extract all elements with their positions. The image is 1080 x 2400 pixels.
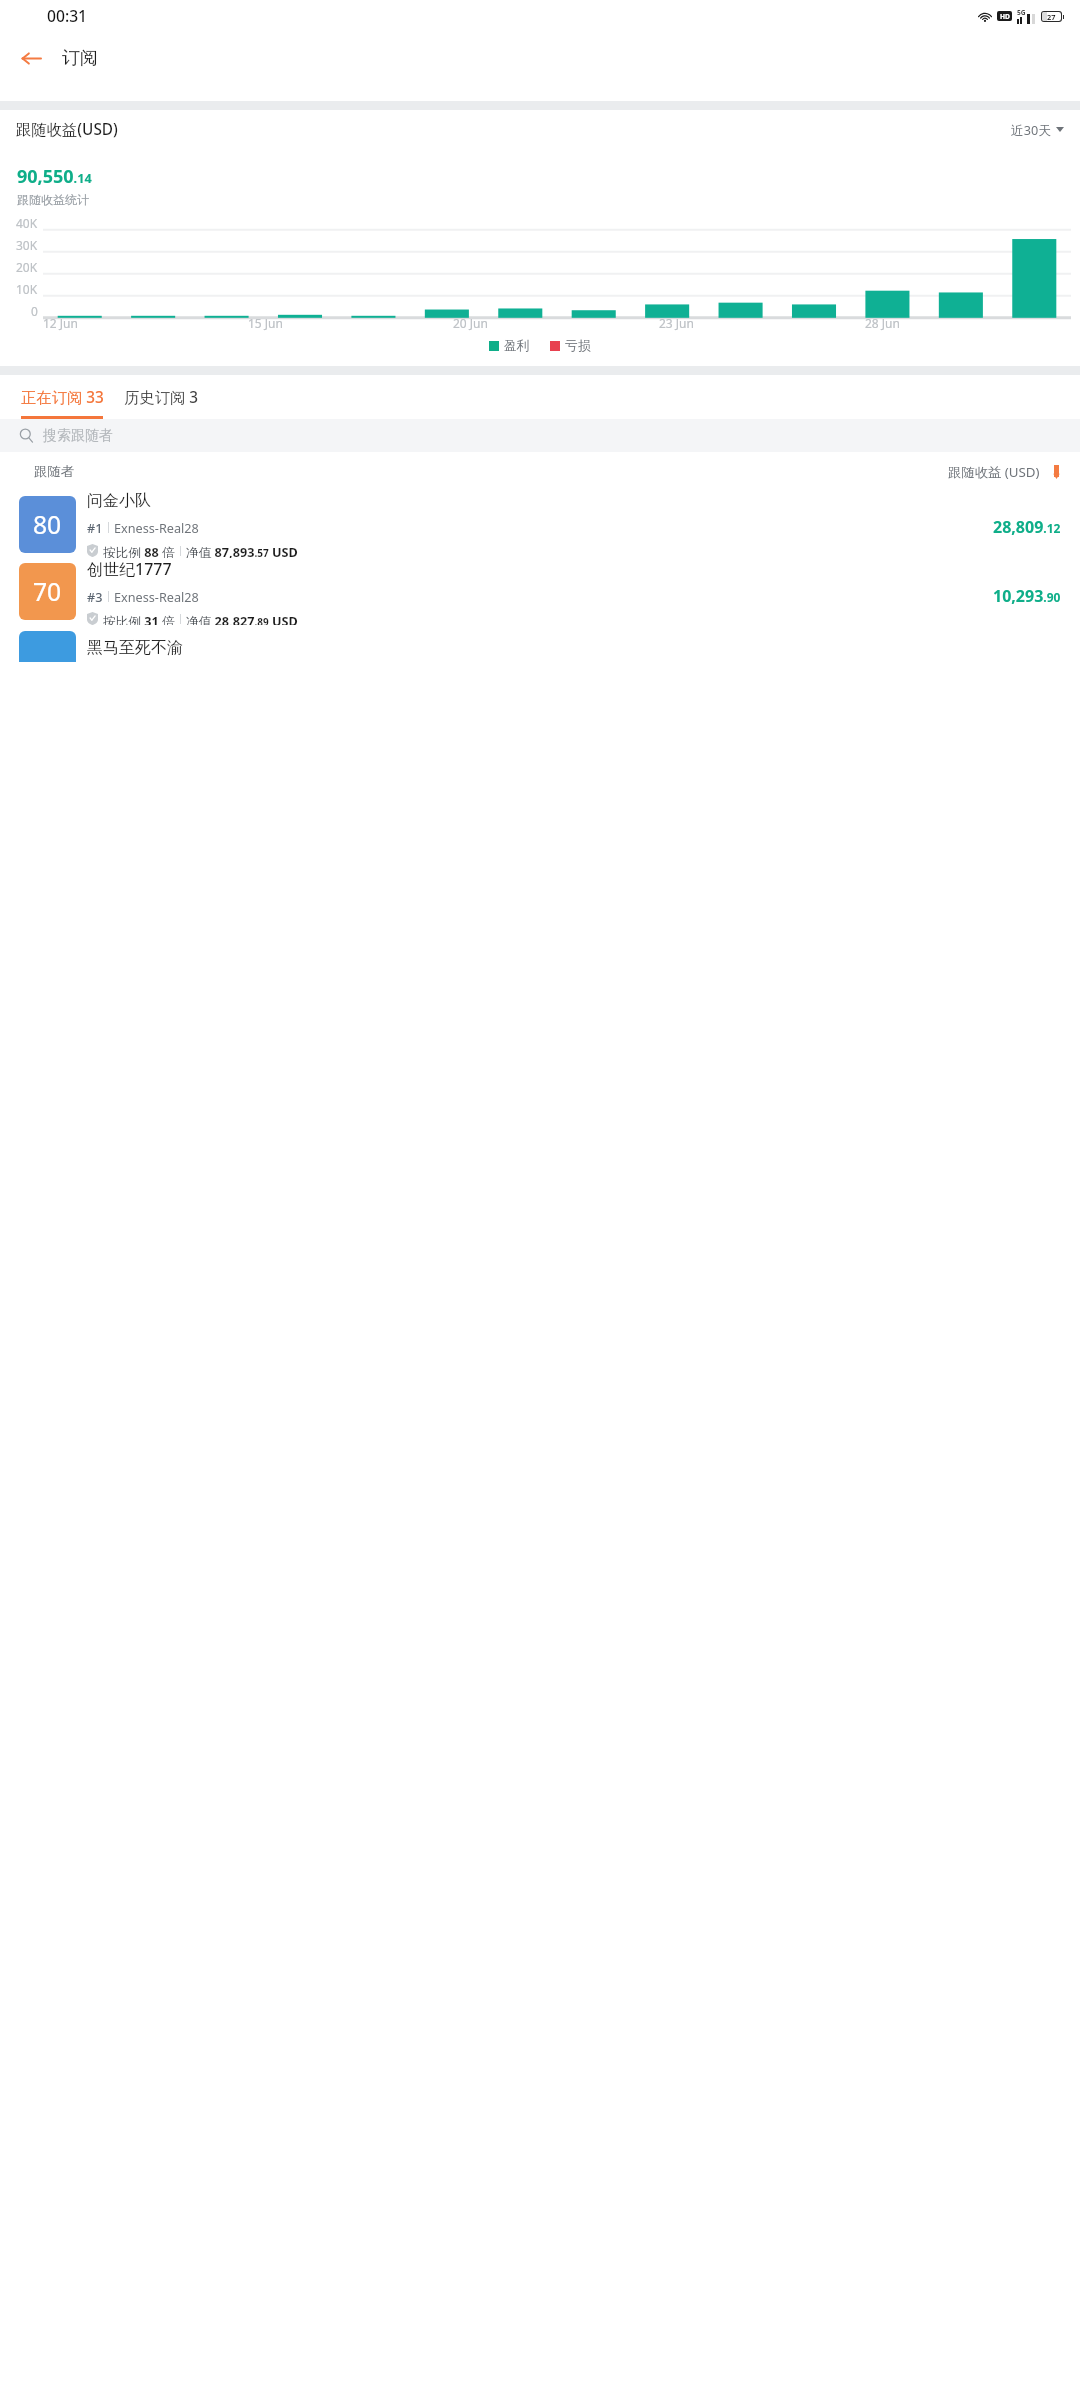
- staticText: 23 Jun: [659, 315, 694, 331]
- staticText: HD: [1000, 12, 1010, 21]
- button[interactable]: 70: [19, 558, 1061, 625]
- staticText: 10K: [16, 281, 38, 297]
- staticText: 盈利: [504, 338, 530, 354]
- staticText: 亏损: [565, 338, 591, 354]
- staticText: 28 Jun: [865, 315, 900, 331]
- staticText: Exness-Real28: [114, 588, 199, 605]
- staticText: 跟随收益统计: [17, 192, 89, 207]
- staticText: 27: [1047, 12, 1056, 21]
- staticText: 90,550.14: [17, 164, 92, 189]
- staticText: 15 Jun: [248, 315, 283, 331]
- staticText: 5G: [1017, 8, 1026, 17]
- button[interactable]: 正在订阅 33: [21, 375, 104, 419]
- button[interactable]: 近30天: [1011, 121, 1064, 138]
- staticText: 净值 87,893.57 USD: [186, 543, 298, 558]
- button[interactable]: Back: [16, 43, 46, 73]
- button[interactable]: 80: [19, 491, 1061, 558]
- staticText: 20K: [16, 259, 38, 275]
- staticText: 按比例 31 倍: [103, 612, 175, 625]
- staticText: 30K: [16, 237, 38, 253]
- staticText: 40K: [16, 215, 38, 231]
- staticText: 80: [33, 508, 62, 542]
- staticText: #3: [87, 588, 103, 605]
- staticText: 按比例 88 倍: [103, 543, 175, 558]
- staticText: 创世纪1777: [87, 558, 172, 580]
- staticText: 跟随者: [34, 463, 74, 480]
- staticText: 正在订阅 33: [21, 387, 104, 408]
- staticText: 问金小队: [87, 491, 151, 511]
- staticText: 净值 28,827.89 USD: [186, 612, 298, 625]
- staticText: 近30天: [1011, 121, 1051, 138]
- staticText: 0: [31, 303, 38, 319]
- button[interactable]: 跟随收益 (USD): [948, 463, 1061, 481]
- staticText: 黑马至死不渝: [87, 638, 183, 658]
- button[interactable]: 搜索跟随者: [19, 419, 1061, 452]
- staticText: #1: [87, 519, 103, 536]
- button[interactable]: 历史订阅 3: [124, 375, 199, 419]
- staticText: 20 Jun: [453, 315, 488, 331]
- staticText: 跟随收益(USD): [16, 119, 118, 140]
- staticText: 订阅: [62, 47, 98, 70]
- staticText: 搜索跟随者: [43, 427, 113, 445]
- staticText: 跟随收益 (USD): [948, 463, 1040, 481]
- staticText: Exness-Real28: [114, 519, 199, 536]
- staticText: 70: [33, 575, 62, 609]
- staticText: 28,809.12: [993, 516, 1061, 538]
- staticText: 历史订阅 3: [124, 387, 199, 408]
- staticText: 12 Jun: [43, 315, 78, 331]
- button[interactable]: 黑马至死不渝: [19, 625, 1061, 662]
- staticText: 00:31: [47, 5, 88, 26]
- staticText: 10,293.90: [993, 585, 1061, 607]
